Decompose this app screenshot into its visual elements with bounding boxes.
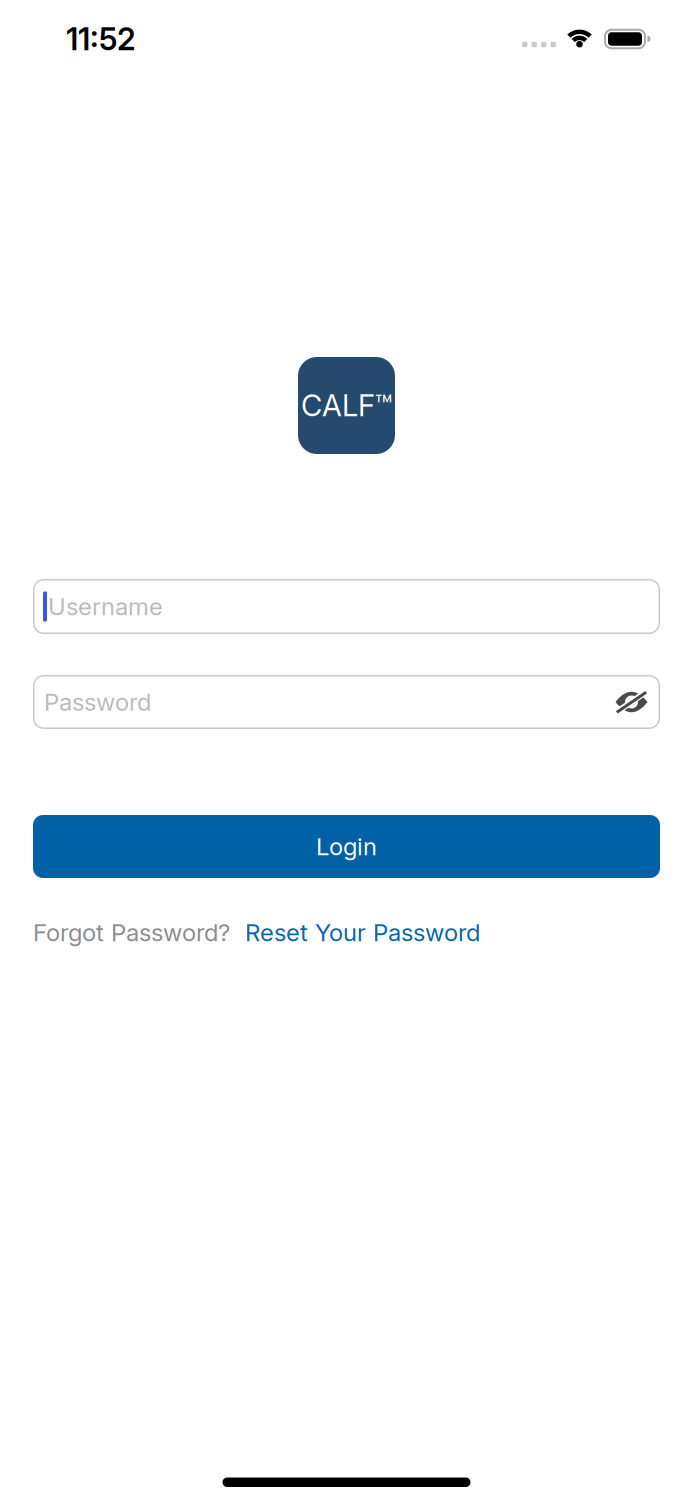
staticText: Login xyxy=(316,832,377,861)
staticText: CALF™ xyxy=(301,388,392,423)
staticText: Username xyxy=(48,592,163,621)
button[interactable]: Username xyxy=(33,579,660,634)
button[interactable] xyxy=(615,691,648,713)
button[interactable]: Login xyxy=(33,815,660,878)
staticText: Password xyxy=(44,687,151,716)
staticText: Forgot Password? xyxy=(33,918,230,947)
button[interactable]: Password xyxy=(33,675,660,729)
button[interactable]: Reset Your Password xyxy=(245,918,480,947)
staticText: 11:52 xyxy=(66,20,136,57)
staticText: Reset Your Password xyxy=(245,918,480,947)
